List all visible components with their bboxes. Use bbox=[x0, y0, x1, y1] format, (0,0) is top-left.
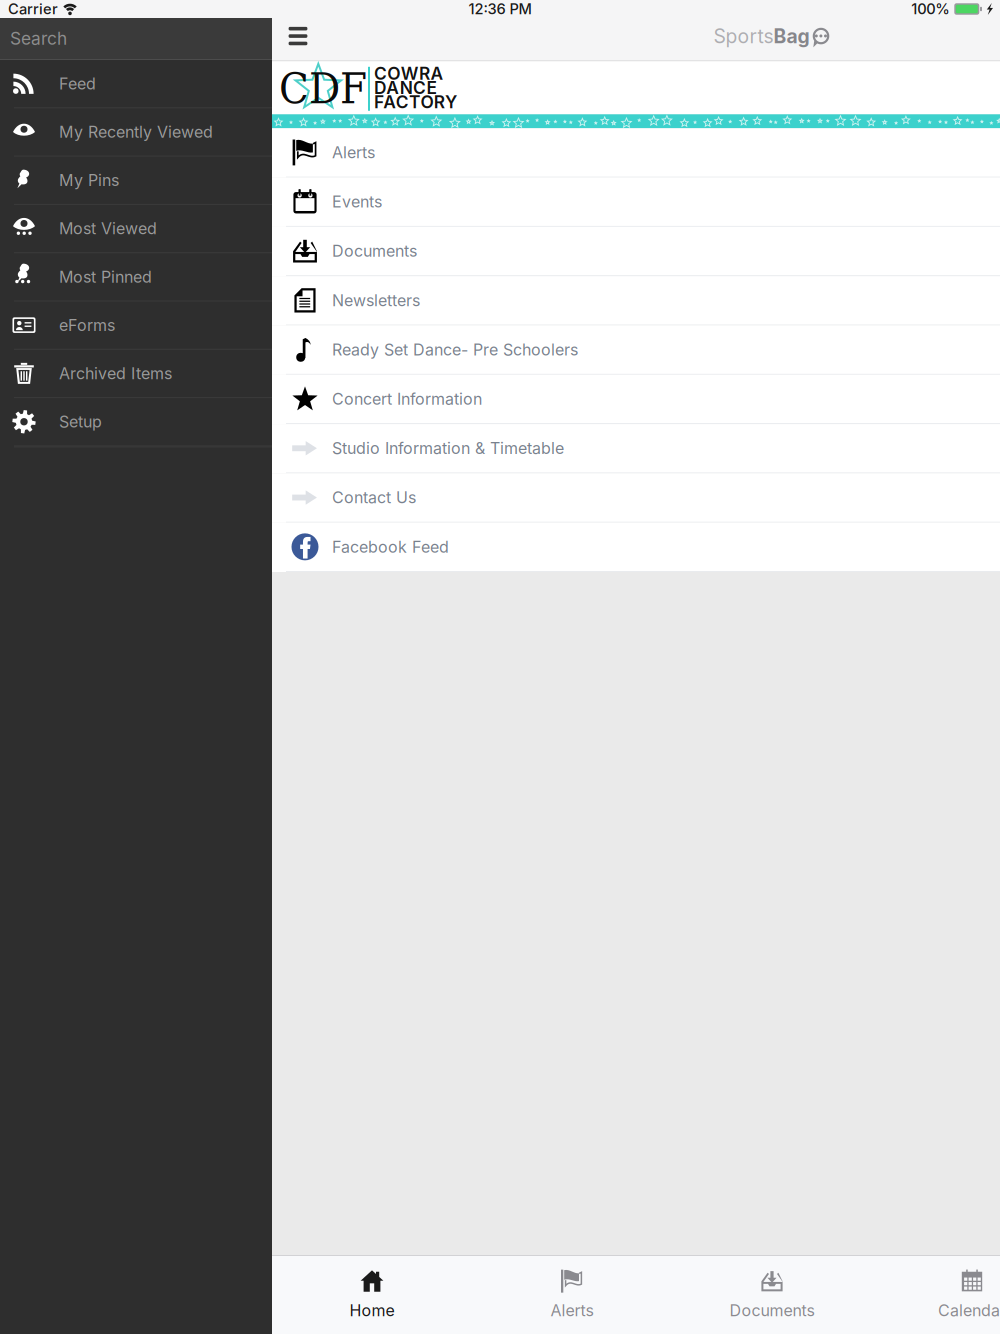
button[interactable]: Ready Set Dance- Pre Schoolers bbox=[272, 325, 1000, 375]
button[interactable]: Documents bbox=[272, 227, 1000, 276]
button[interactable]: eForms bbox=[0, 301, 272, 350]
button[interactable]: Facebook Feed bbox=[272, 523, 1000, 572]
staticText: Feed bbox=[59, 74, 96, 93]
staticText: Alerts bbox=[550, 1301, 593, 1320]
staticText: eForms bbox=[59, 315, 115, 335]
button[interactable]: Home bbox=[272, 1256, 472, 1334]
button[interactable]: Archived Items bbox=[0, 350, 272, 398]
button[interactable]: Documents bbox=[672, 1256, 872, 1334]
staticText: Home bbox=[349, 1301, 394, 1320]
staticText: Most Pinned bbox=[59, 267, 152, 287]
staticText: My Pins bbox=[59, 171, 119, 190]
staticText: Alerts bbox=[332, 143, 375, 162]
button[interactable]: Contact Us bbox=[272, 473, 1000, 523]
staticText: FACTORY bbox=[374, 92, 457, 113]
staticText: Setup bbox=[59, 412, 102, 431]
button[interactable]: Menu bbox=[272, 18, 324, 60]
staticText: Documents bbox=[729, 1301, 814, 1320]
staticText: Archived Items bbox=[59, 364, 172, 383]
staticText: Newsletters bbox=[332, 291, 420, 310]
staticText: Search bbox=[10, 28, 67, 49]
staticText: DANCE bbox=[374, 77, 436, 98]
staticText: Bag bbox=[773, 25, 809, 48]
button[interactable]: My Recently Viewed bbox=[0, 108, 272, 157]
button[interactable]: Most Viewed bbox=[0, 205, 272, 253]
button[interactable]: Alerts bbox=[272, 128, 1000, 178]
button[interactable]: Search bbox=[0, 18, 272, 59]
staticText: Sports bbox=[713, 25, 773, 48]
staticText: Ready Set Dance- Pre Schoolers bbox=[332, 340, 578, 359]
staticText: CDF bbox=[279, 63, 367, 113]
button[interactable]: Studio Information & Timetable bbox=[272, 424, 1000, 473]
staticText: COWRA bbox=[374, 63, 443, 84]
staticText: Calendar bbox=[938, 1301, 1000, 1320]
staticText: 12:36 PM bbox=[468, 0, 531, 18]
staticText: Facebook Feed bbox=[332, 537, 449, 557]
button[interactable]: Concert Information bbox=[272, 375, 1000, 424]
staticText: Contact Us bbox=[332, 488, 416, 507]
staticText: Documents bbox=[332, 241, 417, 261]
staticText: My Recently Viewed bbox=[59, 122, 213, 142]
button[interactable]: Calendar bbox=[872, 1256, 1000, 1334]
button[interactable]: My Pins bbox=[0, 157, 272, 205]
button[interactable]: Most Pinned bbox=[0, 253, 272, 301]
staticText: Events bbox=[332, 192, 382, 211]
button[interactable]: Events bbox=[272, 178, 1000, 227]
button[interactable]: Newsletters bbox=[272, 276, 1000, 325]
staticText: Carrier bbox=[8, 0, 58, 18]
staticText: Concert Information bbox=[332, 389, 482, 409]
button[interactable]: Alerts bbox=[472, 1256, 672, 1334]
staticText: Studio Information & Timetable bbox=[332, 439, 564, 458]
staticText: Most Viewed bbox=[59, 219, 157, 238]
button[interactable]: Feed bbox=[0, 60, 272, 108]
button[interactable]: Setup bbox=[0, 398, 272, 446]
staticText: 100% bbox=[911, 0, 950, 18]
